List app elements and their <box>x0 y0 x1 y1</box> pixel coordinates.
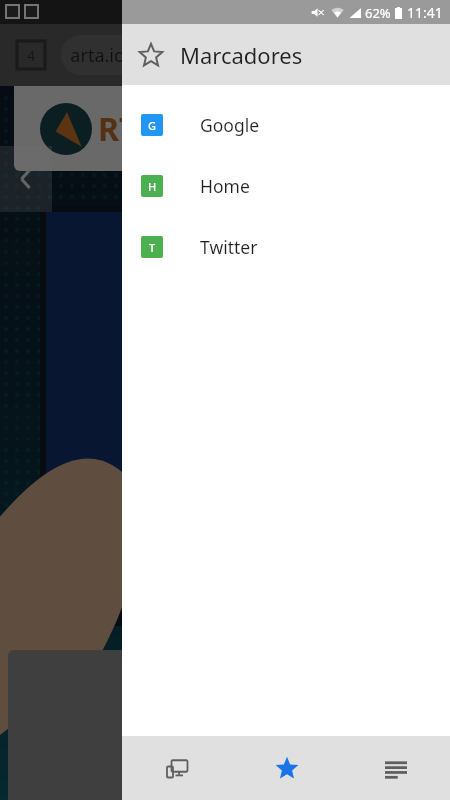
button[interactable]: Reading list <box>341 736 450 800</box>
button[interactable]: G <box>122 94 450 155</box>
staticText: Google <box>200 113 260 137</box>
staticText: RTA <box>98 107 158 151</box>
staticText: Ba <box>177 252 233 315</box>
button[interactable]: Other devices <box>122 736 232 800</box>
button[interactable]: Bookmarks <box>122 26 180 84</box>
staticText: arta.io/ <box>61 43 132 68</box>
staticText: Marcadores <box>180 40 303 70</box>
staticText: 11:41 <box>407 3 443 22</box>
staticText: G <box>148 118 156 133</box>
staticText: 62% <box>365 4 391 22</box>
staticText: T <box>149 240 156 255</box>
button[interactable]: T <box>122 216 450 277</box>
staticText: H <box>148 179 157 194</box>
staticText: 4 <box>27 46 36 65</box>
staticText: Home <box>200 174 250 198</box>
staticText: Twitter <box>200 235 258 259</box>
button[interactable]: Bookmarks <box>232 736 341 800</box>
button[interactable]: H <box>122 155 450 216</box>
